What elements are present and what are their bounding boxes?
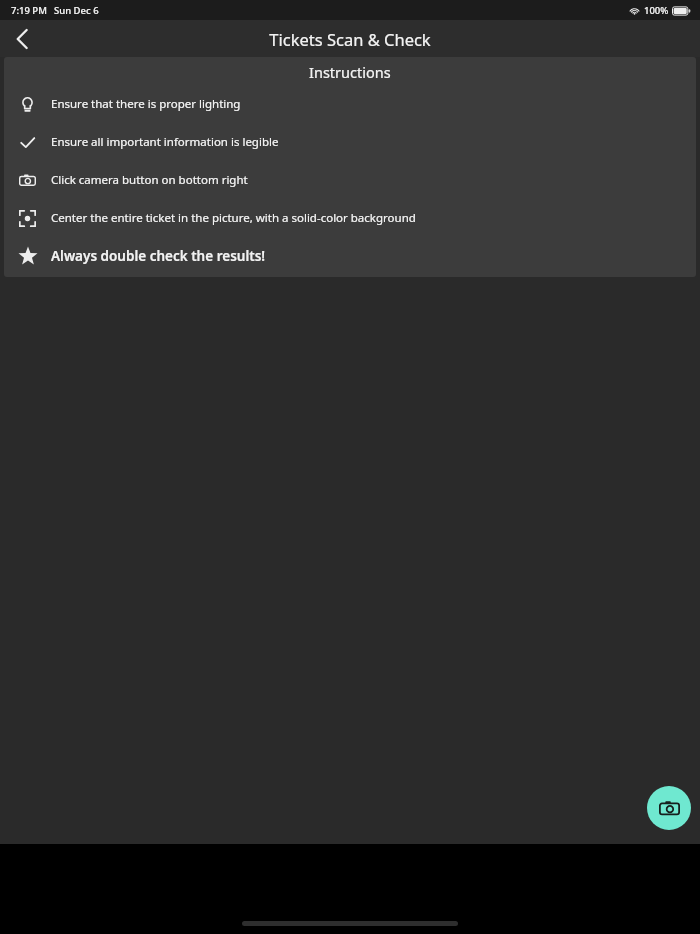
staticText: 7:19 PM xyxy=(11,4,47,17)
button[interactable]: Always double check the results! xyxy=(4,237,696,275)
button[interactable]: Scan ticket with camera xyxy=(647,786,691,830)
staticText: Click camera button on bottom right xyxy=(51,172,248,188)
button[interactable]: Click camera button on bottom right xyxy=(4,161,696,199)
staticText: Tickets Scan & Check xyxy=(269,28,431,50)
staticText: 100% xyxy=(644,4,669,17)
staticText: Ensure all important information is legi… xyxy=(51,134,279,150)
staticText: Sun Dec 6 xyxy=(54,4,99,17)
staticText: Always double check the results! xyxy=(51,247,266,265)
staticText: Ensure that there is proper lighting xyxy=(51,96,241,112)
button[interactable]: Ensure that there is proper lighting xyxy=(4,85,696,123)
staticText: Center the entire ticket in the picture,… xyxy=(51,210,416,226)
button[interactable]: Back xyxy=(0,20,44,57)
button[interactable]: Ensure all important information is legi… xyxy=(4,123,696,161)
staticText: Instructions xyxy=(309,62,391,82)
button[interactable]: Center the entire ticket in the picture,… xyxy=(4,199,696,237)
